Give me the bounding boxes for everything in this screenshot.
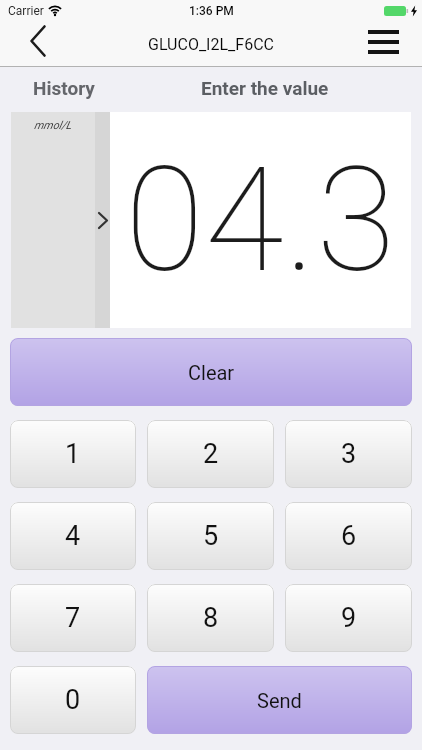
button[interactable] <box>20 23 56 59</box>
staticText: Clear <box>188 361 235 384</box>
button[interactable]: Enter the value <box>127 67 402 112</box>
staticText: GLUCO_I2L_F6CC <box>148 35 274 54</box>
staticText: 1:36 PM <box>189 4 234 18</box>
button[interactable] <box>368 30 399 54</box>
button[interactable]: 0 <box>10 666 136 734</box>
button[interactable]: 5 <box>147 502 274 570</box>
staticText: 5 <box>203 520 219 552</box>
staticText: Send <box>257 689 302 712</box>
staticText: 2 <box>203 438 219 470</box>
button[interactable]: 3 <box>285 420 412 488</box>
button[interactable]: Clear <box>10 338 412 406</box>
staticText: 3 <box>341 438 357 470</box>
button[interactable]: 8 <box>147 584 274 652</box>
button[interactable]: 7 <box>10 584 136 652</box>
staticText: History <box>33 77 95 99</box>
staticText: 8 <box>203 602 219 634</box>
staticText: 9 <box>341 602 357 634</box>
staticText: 6 <box>341 520 357 552</box>
staticText: 0 <box>65 684 81 716</box>
staticText: Enter the value <box>201 77 329 99</box>
staticText: mmol/L <box>34 119 72 132</box>
staticText: 04.3 <box>125 136 397 305</box>
button[interactable]: 9 <box>285 584 412 652</box>
button[interactable]: 6 <box>285 502 412 570</box>
button[interactable]: 1 <box>10 420 136 488</box>
button[interactable]: 2 <box>147 420 274 488</box>
staticText: 7 <box>65 602 81 634</box>
button[interactable]: Send <box>147 666 412 734</box>
staticText: Carrier <box>8 4 44 18</box>
staticText: 1 <box>65 438 81 470</box>
button[interactable]: History <box>0 67 127 112</box>
button[interactable]: 4 <box>10 502 136 570</box>
staticText: 4 <box>65 520 81 552</box>
